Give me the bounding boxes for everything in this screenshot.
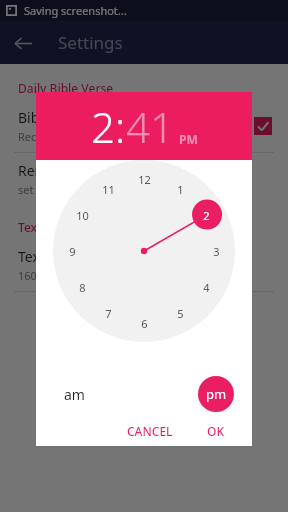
staticText: 2 (203, 208, 210, 223)
button[interactable]: Reminder Time (0, 153, 288, 205)
button[interactable]: 5 (169, 302, 191, 324)
staticText: Settings (58, 31, 123, 54)
button[interactable]: 10 (71, 204, 93, 226)
button[interactable]: CANCEL (119, 419, 181, 443)
staticText: 9 (69, 244, 76, 259)
staticText: Daily Bible Verse (18, 80, 114, 96)
staticText: Saving screenshot... (24, 3, 127, 18)
button[interactable]: 9 (61, 240, 83, 262)
button[interactable]: PM (179, 131, 198, 155)
button[interactable]: 6 (133, 312, 155, 334)
staticText: 10 (76, 208, 89, 223)
staticText: 8 (79, 280, 86, 295)
button[interactable]: 3 (205, 240, 227, 262)
staticText: 7 (105, 306, 112, 321)
staticText: 1 (177, 182, 184, 197)
button[interactable]: Back (8, 28, 38, 58)
button[interactable]: 8 (71, 276, 93, 298)
staticText: pm (206, 385, 227, 403)
button[interactable]: Toggle (254, 117, 272, 135)
staticText: Receive a daily bible verse (18, 129, 153, 144)
button[interactable]: Bible Verse (0, 100, 288, 152)
staticText: 41 (126, 98, 174, 155)
staticText: 5 (177, 306, 184, 321)
staticText: 6 (141, 316, 148, 331)
staticText: 11 (102, 182, 115, 197)
staticText: OK (207, 423, 224, 439)
button[interactable]: 11 (97, 178, 119, 200)
staticText: am (64, 385, 85, 404)
button[interactable]: 4 (195, 276, 217, 298)
button[interactable]: OK (199, 419, 232, 443)
staticText: PM (179, 131, 198, 147)
staticText: 160 (18, 268, 37, 283)
staticText: 2 (91, 98, 115, 155)
staticText: CANCEL (127, 423, 173, 439)
button[interactable]: 12 (133, 168, 155, 190)
button[interactable]: Text Size (0, 239, 288, 291)
button[interactable]: 2 (91, 98, 115, 155)
button[interactable]: 1 (169, 178, 191, 200)
staticText: : (115, 98, 126, 155)
staticText: set time (18, 182, 60, 197)
button[interactable]: 41 (126, 98, 174, 155)
button[interactable]: 7 (97, 302, 119, 324)
staticText: Text Size (18, 247, 75, 266)
staticText: 3 (213, 244, 220, 259)
staticText: 4 (203, 280, 210, 295)
staticText: Reminder Time (18, 161, 119, 180)
staticText: Text (18, 219, 42, 235)
button[interactable]: am (60, 381, 89, 408)
button[interactable]: pm (198, 376, 234, 412)
button[interactable]: 2 (195, 204, 217, 226)
staticText: Bible Verse (18, 108, 91, 127)
staticText: 12 (138, 172, 151, 187)
